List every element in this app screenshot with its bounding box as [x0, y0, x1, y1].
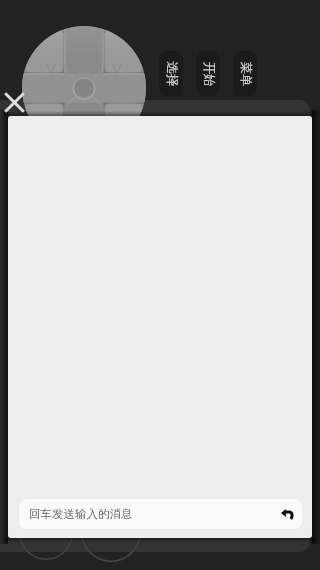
button[interactable]: 开始 — [196, 51, 220, 96]
staticText: 选择 — [163, 61, 179, 86]
button[interactable]: Close — [3, 91, 26, 114]
button[interactable]: B button — [19, 506, 73, 560]
staticText: 回车发送输入的消息 — [29, 507, 133, 521]
staticText: 菜单 — [237, 61, 253, 86]
other: Send — [281, 509, 293, 519]
button[interactable]: 选择 — [159, 51, 183, 96]
staticText: 开始 — [200, 61, 216, 86]
button[interactable]: 菜单 — [233, 51, 257, 96]
button[interactable]: D-pad — [22, 26, 146, 150]
button[interactable]: 回车发送输入的消息 — [19, 499, 302, 529]
button[interactable]: A button — [81, 502, 141, 562]
